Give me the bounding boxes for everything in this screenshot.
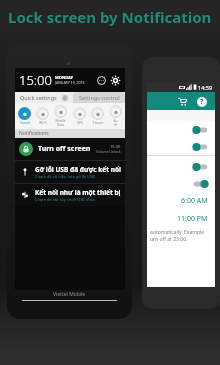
button[interactable]: Kết nối như là một thiết bị media (: [15, 184, 125, 206]
button[interactable]: Settings: [110, 75, 121, 86]
staticText: Lock screen by Notification: [8, 7, 212, 27]
staticText: Volume Unlock: [96, 149, 121, 154]
staticText: Gỡ lỗi USB đã được kết nối: [35, 165, 121, 174]
staticText: Wi-Fi: [39, 121, 47, 125]
staticText: Turn off screen: [38, 144, 91, 154]
button[interactable]: 11:00 PM: [147, 210, 215, 228]
staticText: Quick settings: [20, 94, 57, 101]
button[interactable]: Toggle on: [147, 138, 215, 155]
staticText: 14:59: [198, 84, 213, 91]
staticText: 6:00 AM: [181, 196, 208, 206]
staticText: Viettel Mobile: [53, 291, 86, 298]
staticText: 15:00: [110, 144, 121, 149]
staticText: JANUARY 19, 2015: [55, 80, 85, 85]
button[interactable]: Gỡ lỗi USB đã được kết nối: [15, 161, 125, 183]
staticText: urn off at 23:00.: [150, 236, 188, 243]
button[interactable]: Toggle on: [147, 158, 215, 175]
button[interactable]: Toggle off: [147, 175, 215, 192]
staticText: Chạm để vô hiệu hóa gỡ lỗi USB.: [35, 174, 96, 179]
button[interactable]: More: [96, 75, 107, 86]
button[interactable]: Toggle on: [147, 121, 215, 138]
button[interactable]: Au Hi: [107, 105, 124, 127]
staticText: 11:00 PM: [177, 214, 208, 224]
staticText: automatically. Example: [150, 229, 205, 236]
button[interactable]: Turn off screen: [15, 138, 125, 160]
button[interactable]: Wi-Fi: [34, 107, 51, 125]
staticText: Mobile Data: [55, 119, 66, 127]
staticText: Kết nối như là một thiết bị media (: [35, 188, 121, 197]
staticText: GPS: [77, 121, 83, 125]
staticText: Au Hi: [113, 119, 118, 127]
staticText: ?: [200, 97, 204, 107]
staticText: Settings control: [79, 94, 120, 101]
button[interactable]: GPS: [71, 107, 88, 125]
button[interactable]: Cart: [175, 94, 190, 109]
button[interactable]: Settings control: [73, 92, 125, 103]
button[interactable]: Help: [194, 94, 209, 109]
button[interactable]: 6:00 AM: [147, 192, 215, 210]
staticText: Notifications: [19, 130, 49, 137]
button[interactable]: Y touch: [89, 107, 106, 125]
staticText: MONDAY: [55, 75, 74, 80]
staticText: Sound: [20, 121, 30, 125]
staticText: 15:00: [19, 71, 52, 89]
staticText: Y touch: [92, 121, 104, 125]
button[interactable]: Mobile Data: [52, 105, 69, 127]
button[interactable]: Sound: [16, 107, 33, 125]
button[interactable]: Quick settings: [15, 92, 73, 103]
staticText: Chạm để các tùy chọn USB khác.: [35, 197, 96, 202]
